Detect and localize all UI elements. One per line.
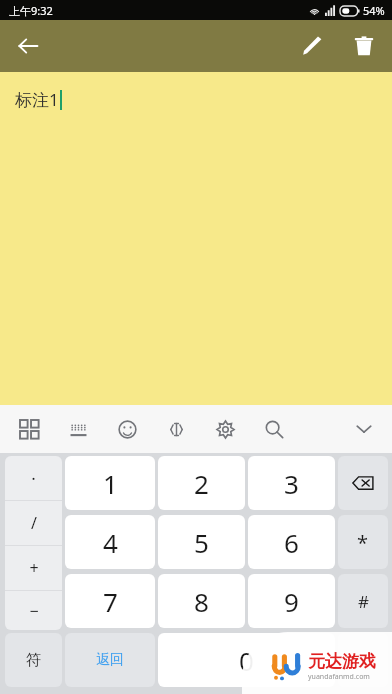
staticText: 0 xyxy=(239,643,254,678)
button[interactable]: Move cursor xyxy=(161,414,191,444)
staticText: 符 xyxy=(26,651,41,670)
button[interactable]: 符 xyxy=(5,633,62,687)
staticText: 3 xyxy=(284,466,299,501)
staticText: 返回 xyxy=(96,651,124,669)
staticText: 上午9:32 xyxy=(9,3,53,18)
button[interactable]: Enter xyxy=(338,633,388,687)
button[interactable]: 9 xyxy=(248,574,335,628)
button[interactable]: · xyxy=(5,456,62,500)
staticText: + xyxy=(29,557,39,579)
button[interactable]: * xyxy=(338,515,388,569)
button[interactable]: Edit xyxy=(290,24,334,68)
button[interactable]: 2 xyxy=(158,456,245,510)
staticText: 5 xyxy=(194,525,209,560)
staticText: yuandafanmd.com xyxy=(308,672,370,682)
staticText: 7 xyxy=(103,584,118,619)
button[interactable]: Keyboard xyxy=(63,414,93,444)
staticText: # xyxy=(358,590,369,613)
staticText: * xyxy=(357,529,369,556)
button[interactable]: Apps xyxy=(14,414,44,444)
staticText: 9 xyxy=(284,584,299,619)
staticText: 元达游戏 xyxy=(308,651,376,672)
staticText: 4 xyxy=(103,525,118,560)
button[interactable]: 0 xyxy=(158,633,335,687)
staticText: 标注1 xyxy=(15,88,59,111)
button[interactable]: Emoji xyxy=(112,414,142,444)
button[interactable]: 6 xyxy=(248,515,335,569)
button[interactable]: 5 xyxy=(158,515,245,569)
staticText: · xyxy=(31,467,36,490)
staticText: 54% xyxy=(363,3,385,18)
button[interactable]: Hide keyboard xyxy=(344,409,384,449)
staticText: − xyxy=(29,600,39,622)
staticText: 1 xyxy=(103,466,118,501)
button[interactable]: 返回 xyxy=(65,633,155,687)
button[interactable]: 3 xyxy=(248,456,335,510)
button[interactable]: # xyxy=(338,574,388,628)
button[interactable]: 7 xyxy=(65,574,155,628)
button[interactable]: Search xyxy=(259,414,289,444)
button[interactable]: Delete xyxy=(342,24,386,68)
button[interactable]: 8 xyxy=(158,574,245,628)
staticText: / xyxy=(31,512,37,534)
button[interactable]: Back xyxy=(6,24,50,68)
button[interactable]: 1 xyxy=(65,456,155,510)
button[interactable]: Settings xyxy=(210,414,240,444)
button[interactable]: − xyxy=(5,591,62,630)
button[interactable]: Backspace xyxy=(338,456,388,510)
button[interactable]: / xyxy=(5,501,62,545)
staticText: 6 xyxy=(284,525,299,560)
staticText: 8 xyxy=(194,584,209,619)
button[interactable]: + xyxy=(5,546,62,590)
staticText: 2 xyxy=(194,466,209,501)
button[interactable]: 4 xyxy=(65,515,155,569)
